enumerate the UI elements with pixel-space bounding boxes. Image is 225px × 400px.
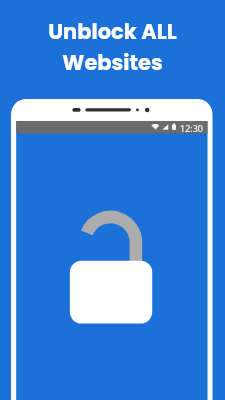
staticText: Websites — [62, 48, 163, 77]
staticText: 12:30 — [180, 122, 204, 134]
staticText: Unblock ALL — [48, 17, 177, 46]
